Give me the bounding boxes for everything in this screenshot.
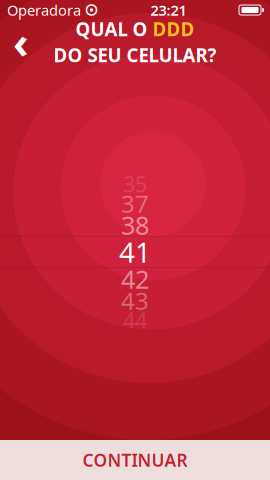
staticText: ‹	[13, 14, 29, 70]
button[interactable]: CONTINUAR	[0, 440, 270, 480]
staticText: CONTINUAR	[82, 448, 187, 471]
staticText: DO SEU CELULAR?	[53, 42, 216, 67]
staticText: 38	[121, 208, 149, 242]
staticText: QUAL O	[75, 17, 152, 41]
staticText: 42	[121, 262, 149, 296]
staticText: DDD	[152, 17, 194, 41]
staticText: 43	[121, 285, 149, 316]
staticText: 41	[119, 233, 151, 271]
staticText: 35	[123, 170, 147, 198]
staticText: Operadora	[7, 0, 81, 20]
staticText: 23:21	[150, 0, 186, 20]
staticText: 44	[123, 306, 147, 334]
staticText: 37	[121, 188, 149, 219]
button[interactable]: Back	[4, 22, 38, 62]
